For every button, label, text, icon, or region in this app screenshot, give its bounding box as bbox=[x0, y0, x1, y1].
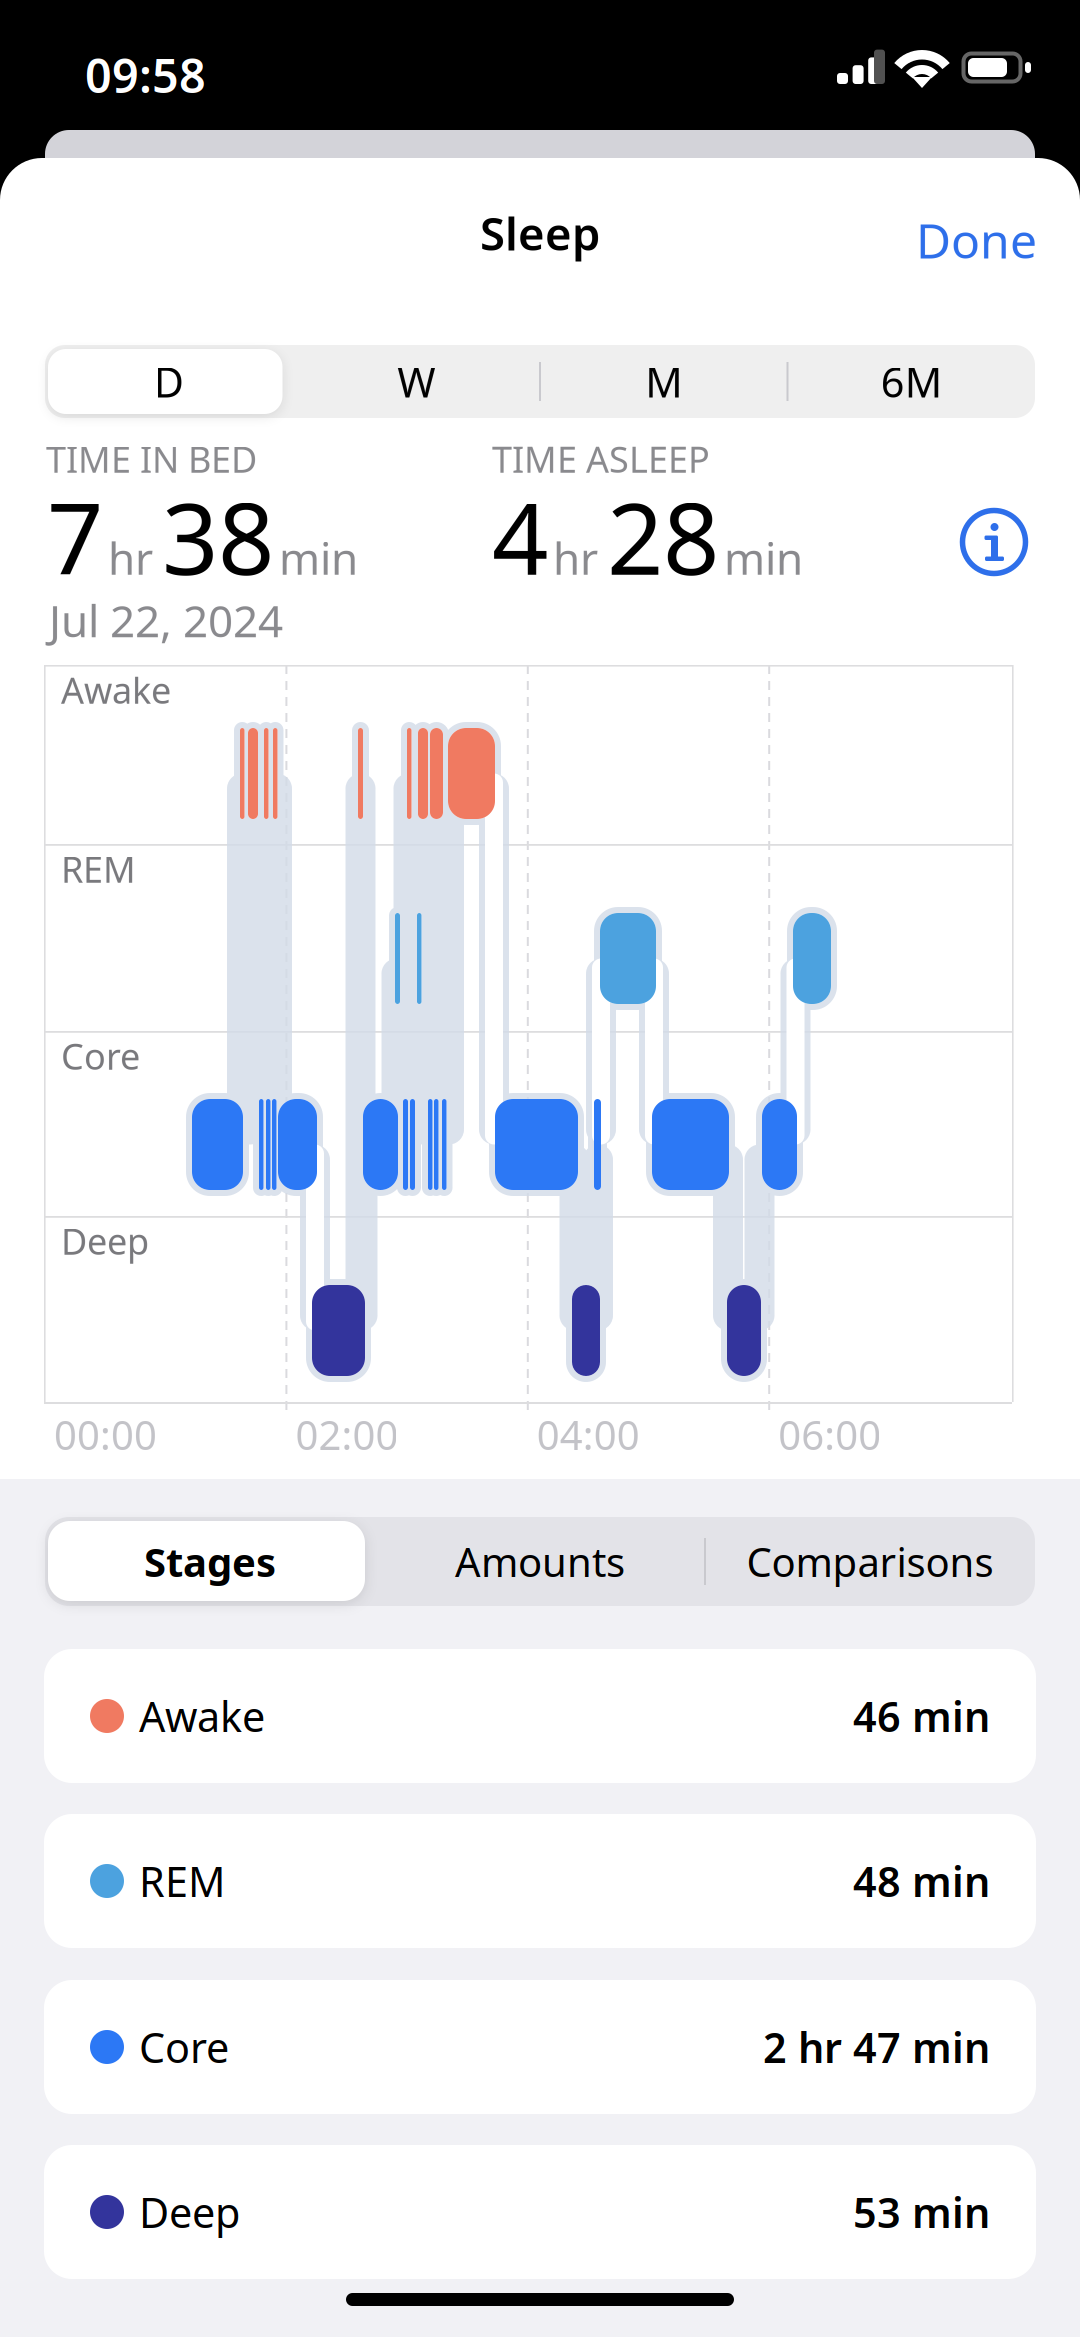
button[interactable]: Awake bbox=[44, 1649, 1036, 1783]
staticText: M bbox=[645, 354, 682, 409]
staticText: 4 bbox=[492, 471, 548, 602]
staticText: TIME IN BED bbox=[46, 435, 257, 483]
staticText: Deep bbox=[61, 1217, 149, 1265]
staticText: hr bbox=[108, 528, 153, 587]
button[interactable]: Done bbox=[892, 186, 1061, 294]
staticText: Comparisons bbox=[746, 1535, 993, 1588]
button[interactable]: 6M bbox=[787, 345, 1035, 418]
staticText: D bbox=[154, 354, 184, 409]
button[interactable]: W bbox=[292, 345, 540, 418]
staticText: 00:00 bbox=[54, 1408, 157, 1461]
staticText: W bbox=[397, 354, 435, 409]
staticText: TIME ASLEEP bbox=[492, 435, 710, 483]
staticText: 04:00 bbox=[537, 1408, 640, 1461]
button[interactable]: Core bbox=[44, 1980, 1036, 2114]
button[interactable]: Amounts bbox=[375, 1517, 705, 1606]
staticText: Sleep bbox=[480, 203, 600, 263]
button[interactable]: D bbox=[45, 345, 292, 418]
staticText: Awake bbox=[139, 1689, 265, 1743]
staticText: Core bbox=[139, 2020, 229, 2074]
staticText: min bbox=[279, 528, 358, 587]
staticText: 2 hr 47 min bbox=[763, 2020, 990, 2074]
staticText: 02:00 bbox=[295, 1408, 398, 1461]
staticText: 7 bbox=[47, 471, 103, 602]
button[interactable]: Stages bbox=[45, 1517, 375, 1606]
staticText: 48 min bbox=[853, 1854, 990, 1908]
staticText: 53 min bbox=[853, 2185, 990, 2239]
staticText: Amounts bbox=[455, 1535, 625, 1588]
button[interactable]: REM bbox=[44, 1814, 1036, 1948]
staticText: Awake bbox=[61, 666, 171, 714]
staticText: hr bbox=[553, 528, 598, 587]
staticText: Stages bbox=[144, 1535, 276, 1588]
staticText: 38 bbox=[162, 471, 274, 602]
staticText: 06:00 bbox=[778, 1408, 881, 1461]
staticText: Done bbox=[916, 208, 1037, 272]
button[interactable]: Deep bbox=[44, 2145, 1036, 2279]
staticText: Jul 22, 2024 bbox=[49, 591, 283, 649]
staticText: Deep bbox=[139, 2185, 240, 2239]
button[interactable]: Comparisons bbox=[705, 1517, 1035, 1606]
staticText: 09:58 bbox=[85, 44, 206, 106]
staticText: REM bbox=[61, 845, 136, 893]
staticText: Core bbox=[61, 1032, 140, 1080]
button[interactable]: About this data bbox=[946, 494, 1042, 590]
staticText: REM bbox=[139, 1854, 225, 1908]
staticText: 28 bbox=[607, 471, 719, 602]
staticText: min bbox=[724, 528, 803, 587]
staticText: 6M bbox=[881, 354, 942, 409]
button[interactable]: M bbox=[540, 345, 787, 418]
staticText: 46 min bbox=[853, 1689, 990, 1743]
